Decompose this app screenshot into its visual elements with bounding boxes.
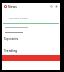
staticText: News	[8, 5, 17, 9]
button[interactable]: Search	[50, 5, 53, 8]
button[interactable]: App logo	[4, 5, 7, 8]
button[interactable]: Account	[55, 5, 58, 8]
staticText: Trending	[4, 49, 18, 53]
staticText: Your daily briefing	[9, 17, 28, 20]
staticText: Top stories	[4, 37, 19, 41]
